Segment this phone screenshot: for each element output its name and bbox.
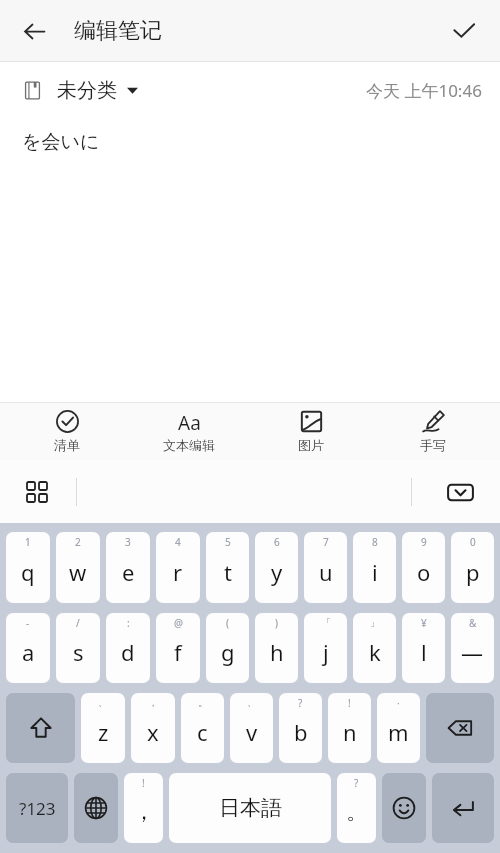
- staticText: s: [73, 637, 84, 667]
- staticText: b: [294, 717, 308, 747]
- staticText: ?: [354, 776, 359, 790]
- staticText: y: [271, 557, 283, 587]
- staticText: q: [21, 557, 35, 587]
- button[interactable]: 4: [156, 532, 200, 603]
- button[interactable]: Emoji: [382, 773, 426, 843]
- button[interactable]: @: [156, 613, 200, 683]
- staticText: 、: [247, 696, 257, 709]
- staticText: f: [174, 637, 182, 667]
- button[interactable]: 日本語: [169, 773, 331, 843]
- button[interactable]: Backspace: [426, 693, 494, 763]
- staticText: ): [275, 616, 278, 630]
- staticText: :: [127, 616, 130, 630]
- staticText: 7: [323, 535, 329, 549]
- button[interactable]: /: [56, 613, 100, 683]
- button[interactable]: Save: [440, 7, 488, 55]
- staticText: g: [221, 637, 235, 667]
- staticText: i: [372, 557, 378, 587]
- staticText: c: [197, 717, 208, 747]
- button[interactable]: Aa: [134, 403, 244, 460]
- staticText: /: [76, 616, 80, 630]
- staticText: (: [226, 616, 229, 630]
- staticText: 手写: [420, 437, 446, 453]
- staticText: 5: [225, 535, 231, 549]
- button[interactable]: 2: [56, 532, 100, 603]
- staticText: u: [319, 557, 333, 587]
- button[interactable]: 手写: [378, 403, 488, 460]
- staticText: x: [147, 717, 159, 747]
- button[interactable]: Enter: [432, 773, 494, 843]
- button[interactable]: 9: [402, 532, 445, 603]
- staticText: ?: [298, 696, 303, 710]
- button[interactable]: -: [6, 613, 50, 683]
- staticText: 0: [470, 535, 476, 549]
- button[interactable]: :: [106, 613, 150, 683]
- button[interactable]: ?: [279, 693, 322, 763]
- button[interactable]: 、: [230, 693, 273, 763]
- staticText: a: [22, 637, 35, 667]
- button[interactable]: 」: [353, 613, 396, 683]
- button[interactable]: 1: [6, 532, 50, 603]
- button[interactable]: !: [124, 773, 163, 843]
- button[interactable]: 。: [181, 693, 224, 763]
- button[interactable]: ·: [377, 693, 420, 763]
- button[interactable]: 0: [451, 532, 494, 603]
- staticText: !: [142, 776, 145, 790]
- button[interactable]: Change language: [74, 773, 118, 843]
- staticText: o: [417, 557, 431, 587]
- button[interactable]: ?: [337, 773, 376, 843]
- button[interactable]: ¥: [402, 613, 445, 683]
- staticText: w: [69, 557, 87, 587]
- button[interactable]: Keyboard options: [16, 471, 58, 513]
- staticText: 9: [421, 535, 427, 549]
- staticText: k: [369, 637, 381, 667]
- button[interactable]: 6: [255, 532, 298, 603]
- staticText: h: [270, 637, 284, 667]
- staticText: d: [121, 637, 135, 667]
- button[interactable]: 5: [206, 532, 249, 603]
- button[interactable]: 7: [304, 532, 347, 603]
- button[interactable]: (: [206, 613, 249, 683]
- staticText: @: [174, 616, 183, 630]
- staticText: を会いに: [22, 130, 100, 154]
- staticText: 3: [125, 535, 131, 549]
- staticText: 2: [75, 535, 81, 549]
- button[interactable]: Back: [10, 7, 58, 55]
- staticText: 清单: [54, 437, 80, 453]
- staticText: t: [224, 557, 232, 587]
- staticText: Aa: [178, 410, 201, 433]
- staticText: ·: [397, 696, 400, 710]
- button[interactable]: Hide keyboard: [438, 470, 482, 514]
- staticText: r: [173, 557, 183, 587]
- staticText: l: [421, 637, 427, 667]
- button[interactable]: Shift: [6, 693, 75, 763]
- staticText: ，: [148, 696, 158, 709]
- button[interactable]: 图片: [256, 403, 366, 460]
- staticText: 」: [370, 616, 380, 629]
- staticText: 。: [346, 798, 368, 826]
- button[interactable]: 、: [81, 693, 125, 763]
- staticText: m: [388, 717, 409, 747]
- staticText: 文本编辑: [163, 437, 215, 453]
- staticText: 6: [274, 535, 280, 549]
- staticText: j: [323, 637, 329, 667]
- button[interactable]: 清单: [12, 403, 122, 460]
- button[interactable]: !: [328, 693, 371, 763]
- staticText: 8: [372, 535, 378, 549]
- staticText: 图片: [298, 437, 324, 453]
- staticText: 日本語: [219, 795, 282, 821]
- button[interactable]: 「: [304, 613, 347, 683]
- button[interactable]: ，: [131, 693, 175, 763]
- button[interactable]: &: [451, 613, 494, 683]
- button[interactable]: 8: [353, 532, 396, 603]
- staticText: v: [246, 717, 258, 747]
- staticText: 未分类: [57, 78, 117, 103]
- staticText: ，: [133, 798, 155, 826]
- staticText: &: [469, 616, 477, 630]
- button[interactable]: ?123: [6, 773, 68, 843]
- button[interactable]: 未分类: [22, 78, 138, 103]
- staticText: 「: [321, 616, 331, 629]
- button[interactable]: 3: [106, 532, 150, 603]
- button[interactable]: ): [255, 613, 298, 683]
- staticText: e: [122, 557, 135, 587]
